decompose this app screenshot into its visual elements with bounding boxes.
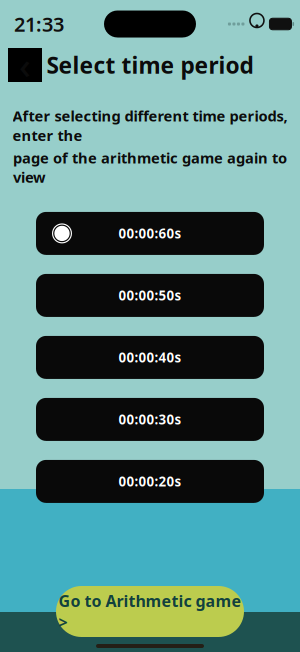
- button[interactable]: 00:00:40s: [36, 336, 264, 379]
- staticText: 00:00:60s: [118, 225, 181, 242]
- staticText: ‹: [19, 41, 31, 89]
- staticText: page of the arithmetic game again to vie…: [13, 148, 287, 187]
- button[interactable]: 00:00:50s: [36, 274, 264, 317]
- staticText: 00:00:50s: [118, 287, 181, 304]
- staticText: After selecting different time periods, …: [12, 106, 287, 145]
- staticText: 21:33: [14, 11, 64, 37]
- staticText: 00:00:30s: [118, 411, 181, 428]
- button[interactable]: Go to Arithmetic game >: [56, 586, 244, 637]
- staticText: Select time period: [46, 50, 253, 80]
- staticText: 00:00:20s: [118, 473, 181, 490]
- staticText: Go to Arithmetic game >: [58, 590, 241, 633]
- button[interactable]: 00:00:20s: [36, 460, 264, 503]
- staticText: 00:00:40s: [118, 349, 181, 366]
- button[interactable]: 00:00:60s: [36, 212, 264, 255]
- button[interactable]: 00:00:30s: [36, 398, 264, 441]
